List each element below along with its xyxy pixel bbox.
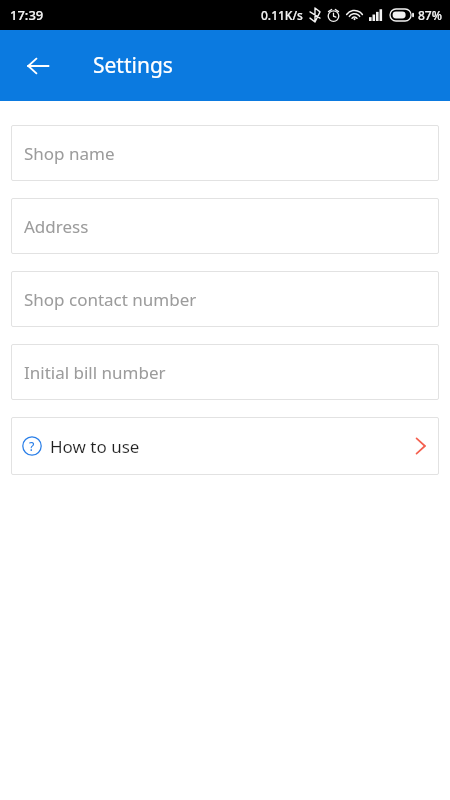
staticText: 0.11K/s (261, 7, 303, 23)
button[interactable]: Back (14, 42, 62, 90)
button[interactable]: Shop name (11, 125, 439, 181)
staticText: 17:39 (10, 6, 44, 24)
button[interactable]: Initial bill number (11, 344, 439, 400)
staticText: Initial bill number (24, 361, 166, 384)
staticText: Shop name (24, 142, 115, 165)
staticText: 87% (418, 7, 442, 23)
staticText: ? (29, 438, 35, 454)
staticText: Shop contact number (24, 288, 197, 311)
button[interactable]: Shop contact number (11, 271, 439, 327)
staticText: Settings (93, 51, 173, 80)
button[interactable]: Address (11, 198, 439, 254)
button[interactable]: ? (11, 417, 439, 475)
staticText: How to use (50, 435, 140, 458)
staticText: Address (24, 215, 89, 238)
